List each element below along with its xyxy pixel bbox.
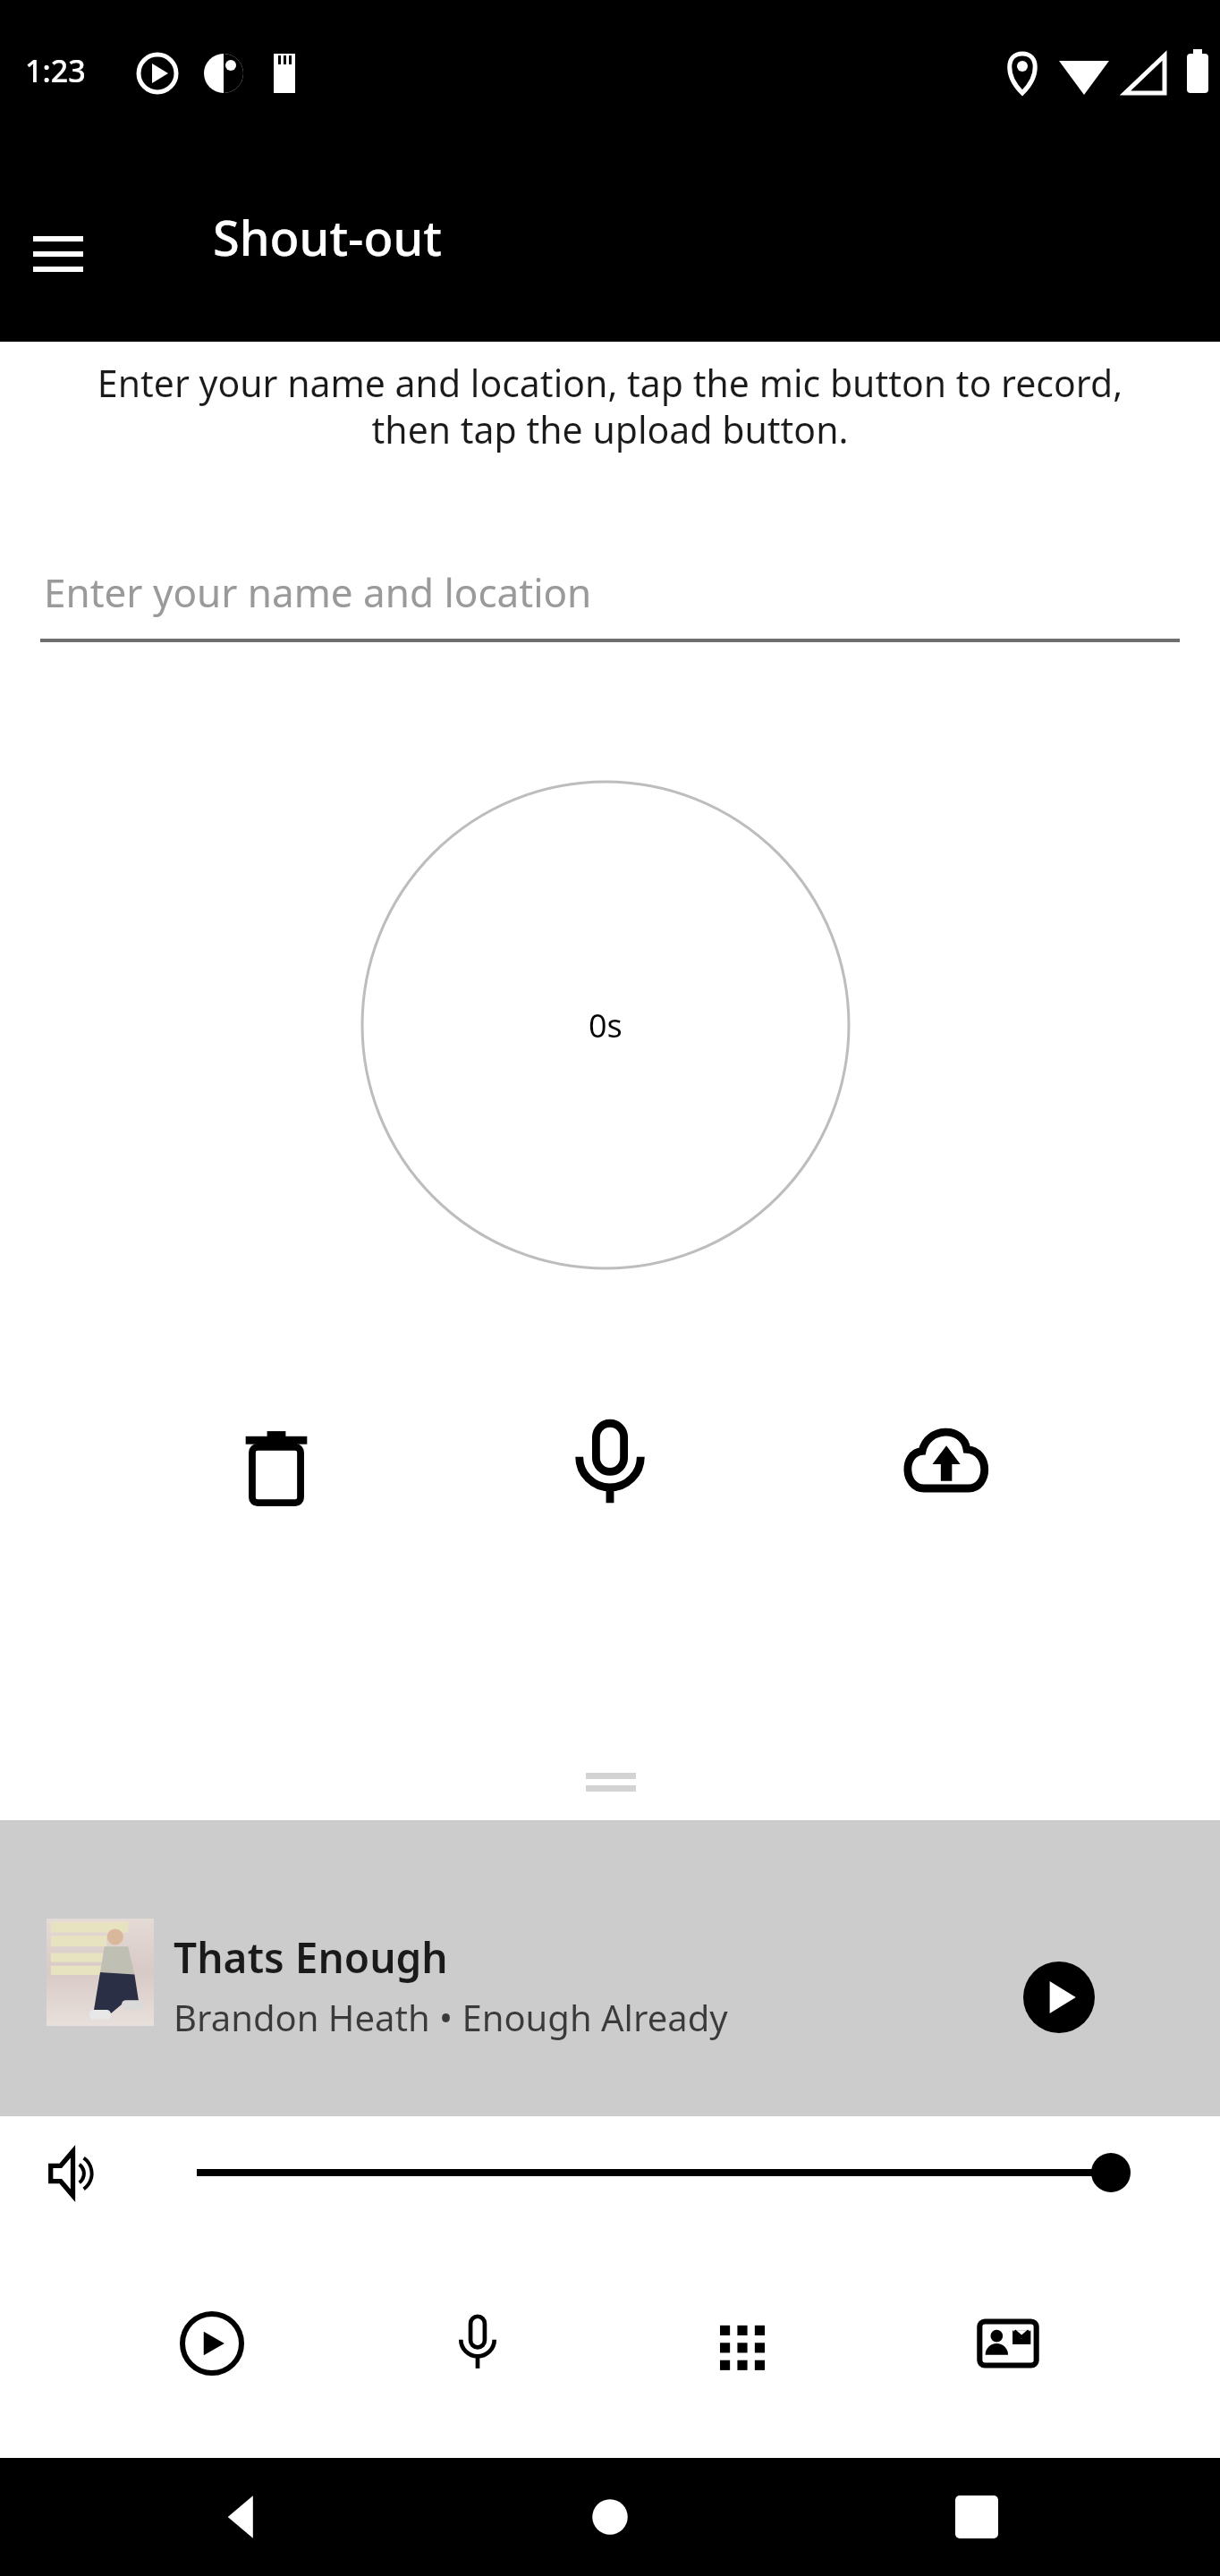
button[interactable]: Thats Enough <box>0 1820 1220 2116</box>
button[interactable] <box>188 2132 1172 2213</box>
button[interactable]: Play <box>1023 1962 1095 2033</box>
button[interactable]: Open navigation menu <box>18 214 98 294</box>
button[interactable]: Apps <box>689 2290 796 2397</box>
button[interactable]: Enter your name and location <box>40 555 1180 644</box>
button[interactable]: Delete recording <box>218 1406 335 1522</box>
button[interactable]: Recent apps <box>941 2481 1012 2553</box>
button[interactable]: Home <box>574 2481 646 2553</box>
staticText: Enter your name and location, tap the mi… <box>54 358 1166 454</box>
button[interactable]: Volume <box>43 2141 107 2206</box>
button[interactable]: Record with microphone <box>552 1406 668 1522</box>
staticText: 1:23 <box>25 50 86 91</box>
staticText: Shout-out <box>213 204 442 270</box>
button[interactable]: 0s <box>360 780 851 1270</box>
staticText: Brandon Heath • Enough Already <box>174 1993 728 2041</box>
staticText: Enter your name and location <box>44 565 592 619</box>
button[interactable] <box>586 1773 636 1796</box>
button[interactable]: Back <box>208 2481 279 2553</box>
staticText: Thats Enough <box>174 1929 448 1986</box>
button[interactable]: Play <box>158 2290 266 2397</box>
button[interactable]: Record <box>424 2290 531 2397</box>
button[interactable]: Contacts <box>954 2290 1062 2397</box>
staticText: 0s <box>589 1004 623 1047</box>
button[interactable]: Upload recording <box>886 1406 1003 1522</box>
